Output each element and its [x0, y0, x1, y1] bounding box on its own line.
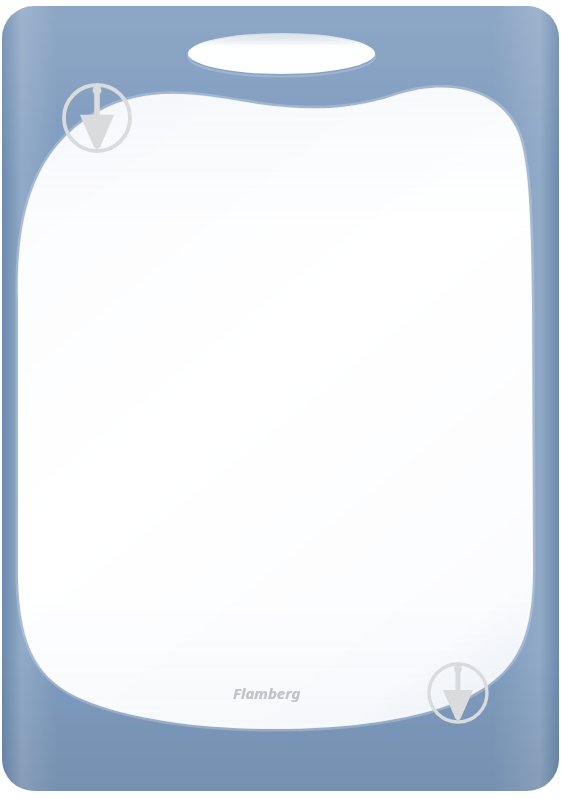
staticText: Flamberg [233, 683, 301, 703]
button[interactable]: Flamberg [0, 0, 561, 799]
button[interactable]: Brand watermark [64, 85, 130, 151]
button[interactable]: Brand watermark [429, 664, 487, 722]
